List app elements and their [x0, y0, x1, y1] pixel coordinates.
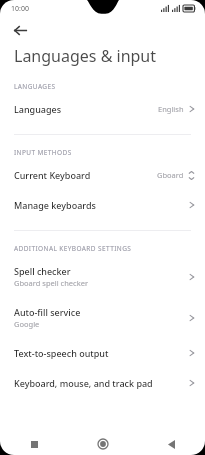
button[interactable]: Auto-fill service [0, 297, 205, 338]
staticText: Gboard [157, 170, 184, 180]
button[interactable]: Manage keyboards [0, 190, 205, 220]
staticText: Languages & input [14, 45, 157, 67]
staticText: LANGUAGES [14, 82, 56, 91]
staticText: Auto-fill service [14, 306, 81, 318]
staticText: Keyboard, mouse, and track pad [14, 377, 153, 389]
button[interactable]: Keyboard, mouse, and track pad [0, 368, 205, 398]
staticText: Manage keyboards [14, 199, 96, 211]
button[interactable]: Spell checker [0, 256, 205, 297]
staticText: Languages [14, 103, 62, 115]
staticText: INPUT METHODS [14, 148, 72, 157]
staticText: 10:00 [11, 4, 29, 14]
button[interactable]: Current Keyboard [0, 160, 205, 190]
staticText: Spell checker [14, 265, 71, 277]
staticText: Google [14, 319, 40, 329]
staticText: Current Keyboard [14, 169, 91, 181]
button[interactable]: Back [137, 433, 205, 455]
staticText: ADDITIONAL KEYBOARD SETTINGS [14, 244, 132, 253]
button[interactable]: Back [7, 17, 33, 43]
button[interactable]: Home [69, 433, 137, 455]
staticText: Gboard spell checker [14, 278, 88, 288]
button[interactable]: Text-to-speech output [0, 338, 205, 368]
staticText: Text-to-speech output [14, 347, 109, 359]
staticText: English [158, 104, 184, 114]
button[interactable]: Recent apps [0, 433, 69, 455]
button[interactable]: Languages [0, 94, 205, 124]
